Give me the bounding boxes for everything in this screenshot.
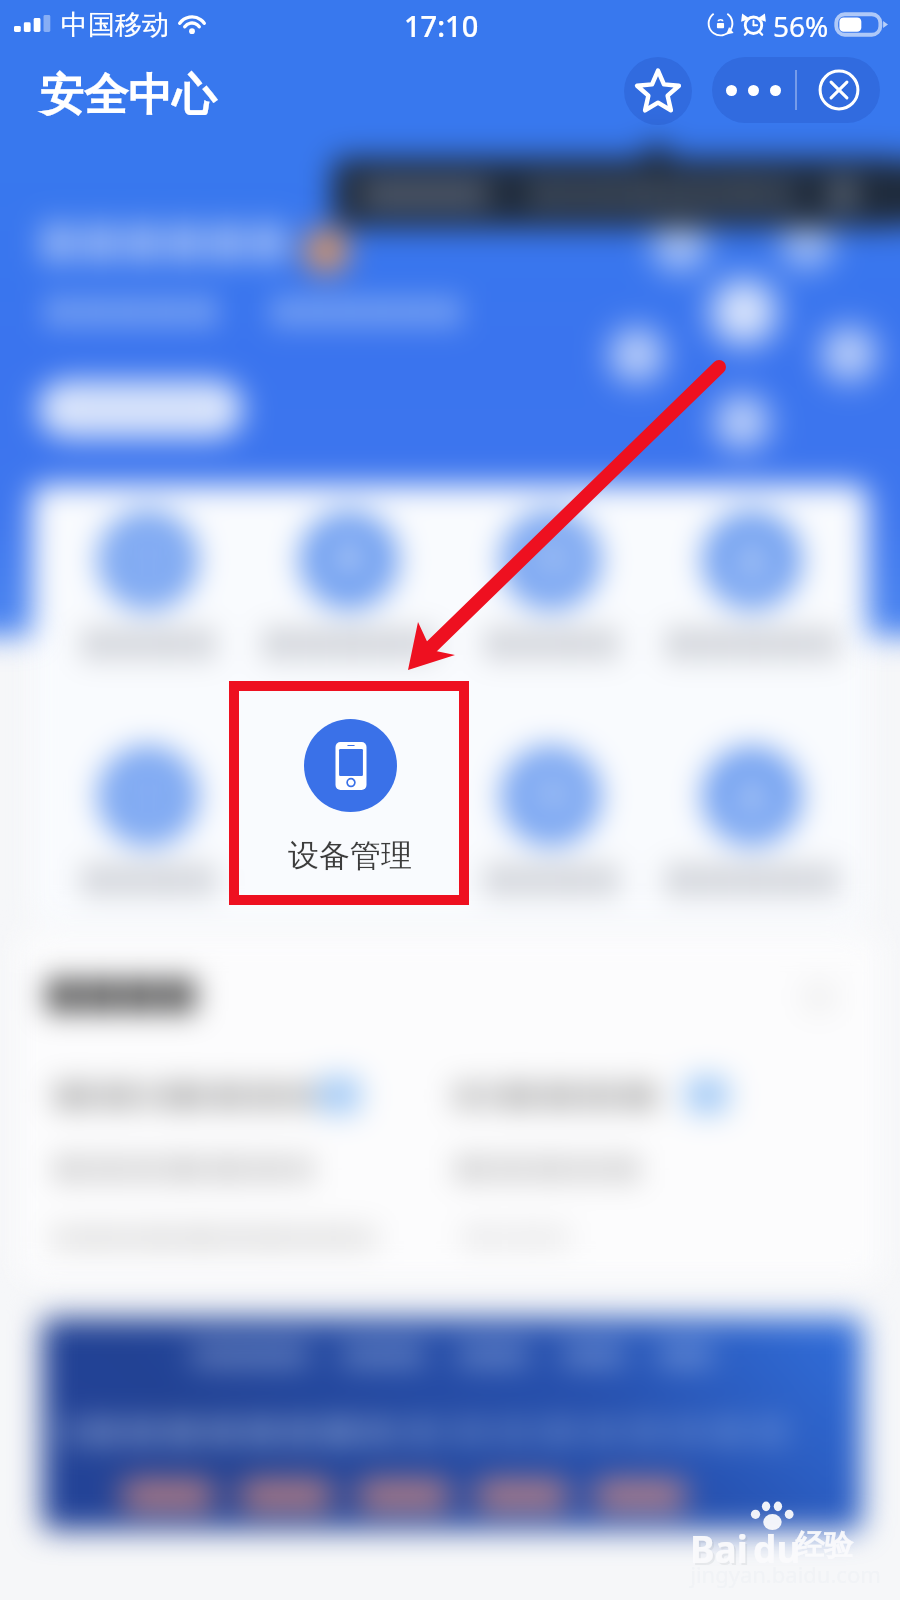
- button[interactable]: 推广横幅: [42, 1318, 862, 1530]
- button[interactable]: Close: [797, 57, 880, 123]
- staticText: 安全中心: [40, 68, 216, 123]
- staticText: Bai: [692, 1525, 750, 1575]
- button[interactable]: 安全体检: [47, 505, 233, 691]
- button[interactable]: 病毒查杀: [254, 505, 440, 691]
- staticText: 经验: [795, 1527, 853, 1564]
- staticText: 设备管理: [288, 836, 412, 875]
- button[interactable]: 隐私保护: [461, 712, 647, 898]
- button[interactable]: 设备信息: [18, 935, 882, 1280]
- staticText: 中国移动: [61, 8, 169, 42]
- button[interactable]: 设备管理: [265, 719, 435, 875]
- staticText: Bai: [690, 1523, 748, 1573]
- staticText: du: [753, 1523, 801, 1573]
- button[interactable]: 账号保护: [668, 505, 854, 691]
- button[interactable]: 网络诊断: [47, 712, 233, 898]
- button[interactable]: More options: [712, 57, 795, 123]
- staticText: 56%: [773, 7, 829, 45]
- staticText: 17:10: [404, 6, 479, 45]
- button[interactable]: 骚扰拦截: [668, 712, 854, 898]
- button[interactable]: 支付安全: [461, 505, 647, 691]
- button[interactable]: Favorite: [624, 57, 692, 125]
